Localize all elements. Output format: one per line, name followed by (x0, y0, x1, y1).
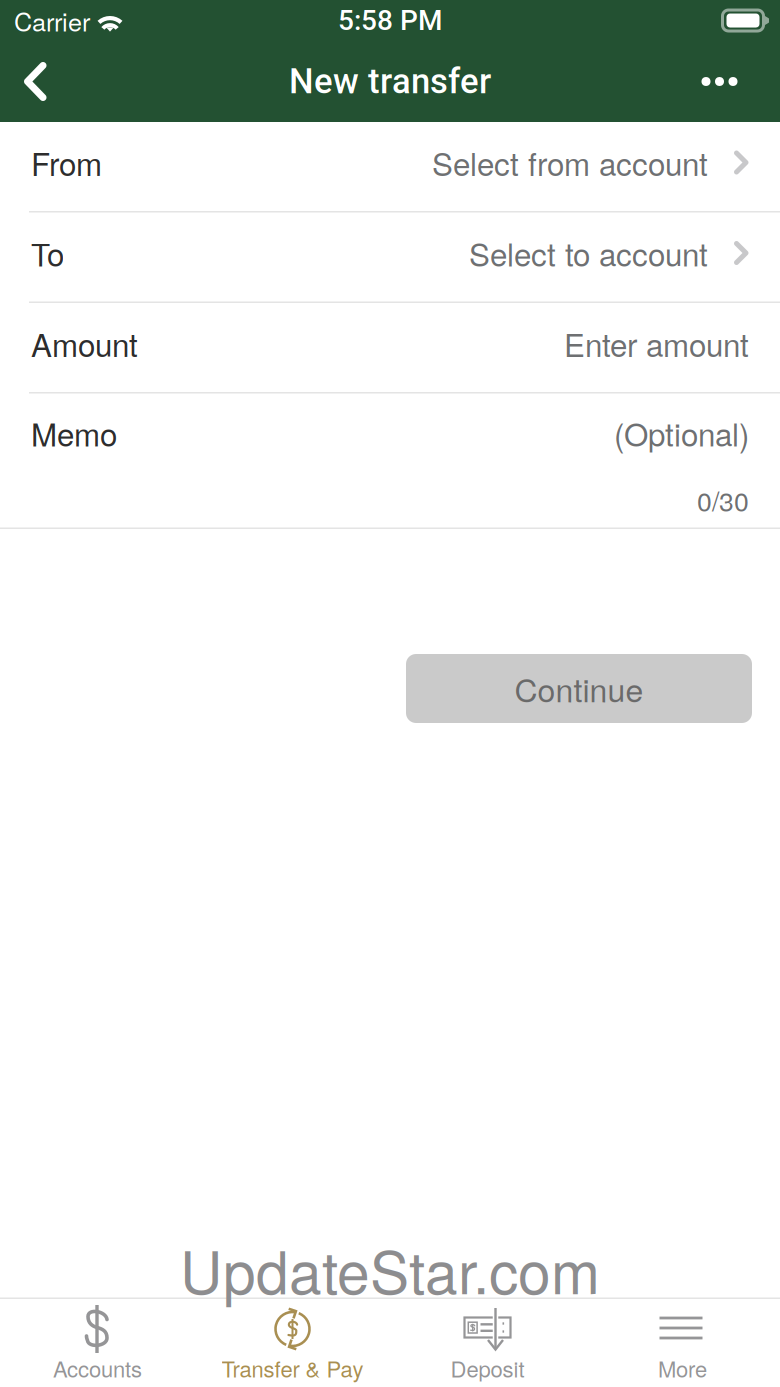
button[interactable]: Memo (0, 393, 780, 527)
staticText: Enter amount (564, 321, 749, 366)
staticText: (Optional) (614, 411, 749, 455)
staticText: 5:58 PM (338, 4, 442, 37)
staticText: Transfer & Pay (221, 1352, 363, 1384)
staticText: Carrier (14, 2, 90, 39)
button[interactable]: To (0, 212, 780, 301)
staticText: More (658, 1352, 707, 1384)
staticText: To (31, 231, 64, 275)
staticText: Deposit (450, 1352, 524, 1384)
button[interactable]: More options (659, 41, 780, 122)
staticText: UpdateStar.com (180, 1227, 600, 1311)
staticText: Accounts (53, 1352, 142, 1384)
staticText: Amount (31, 321, 138, 366)
button[interactable]: Amount (0, 303, 780, 392)
staticText: 0/30 (697, 481, 749, 519)
staticText: Select from account (432, 140, 708, 185)
button[interactable]: More (585, 1299, 780, 1387)
staticText: New transfer (289, 61, 491, 102)
button[interactable]: Back (0, 41, 70, 122)
staticText: From (31, 140, 102, 185)
staticText: Memo (31, 411, 117, 455)
staticText: Select to account (469, 231, 708, 275)
button[interactable]: Continue (406, 654, 752, 723)
button[interactable]: Deposit (390, 1299, 585, 1387)
staticText: Continue (514, 666, 643, 711)
button[interactable]: Accounts (0, 1299, 195, 1387)
button[interactable]: Transfer & Pay (195, 1299, 390, 1387)
button[interactable]: From (0, 122, 780, 211)
